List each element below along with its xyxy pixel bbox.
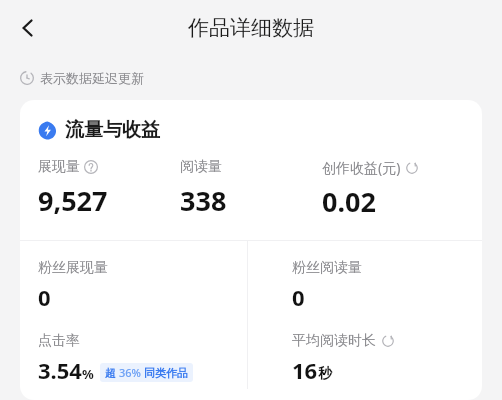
staticText: 36% [119,365,144,380]
staticText: 0 [292,282,305,312]
staticText: 3.54 [38,355,82,385]
staticText: 流量与收益 [65,118,160,142]
staticText: % [82,365,94,383]
staticText: 9,527 [38,182,108,219]
staticText: 展现量 [38,158,80,176]
staticText: 超 [105,365,119,380]
staticText: 0.02 [322,183,376,220]
staticText: 粉丝展现量 [38,259,108,277]
staticText: 阅读量 [180,158,222,176]
staticText: 创作收益(元) [322,158,401,177]
staticText: 表示数据延迟更新 [40,70,144,86]
staticText: 平均阅读时长 [292,332,376,350]
staticText: 16 [292,355,318,385]
staticText: 粉丝阅读量 [292,259,362,277]
staticText: 0 [38,282,51,312]
staticText: 338 [180,182,227,219]
staticText: 秒 [318,365,332,383]
staticText: 作品详细数据 [188,15,314,41]
staticText: 点击率 [38,332,80,350]
staticText: 同类作品 [144,366,188,380]
button[interactable]: Back [6,6,50,50]
